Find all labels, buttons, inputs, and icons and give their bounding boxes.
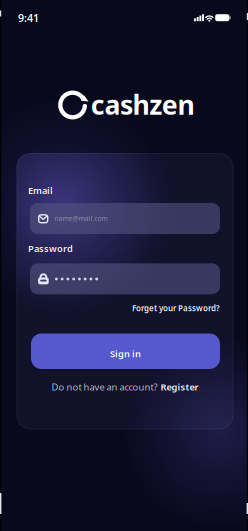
staticText: Email — [28, 184, 53, 197]
staticText: Forget your Password? — [132, 303, 220, 313]
staticText: Do not have an account? — [51, 381, 157, 393]
staticText: Sign in — [110, 347, 141, 360]
staticText: Password — [28, 242, 73, 255]
staticText: name@mail.com — [54, 214, 107, 223]
staticText: Register — [160, 381, 198, 393]
staticText: 9:41 — [18, 11, 39, 25]
staticText: cashzen — [91, 87, 194, 122]
